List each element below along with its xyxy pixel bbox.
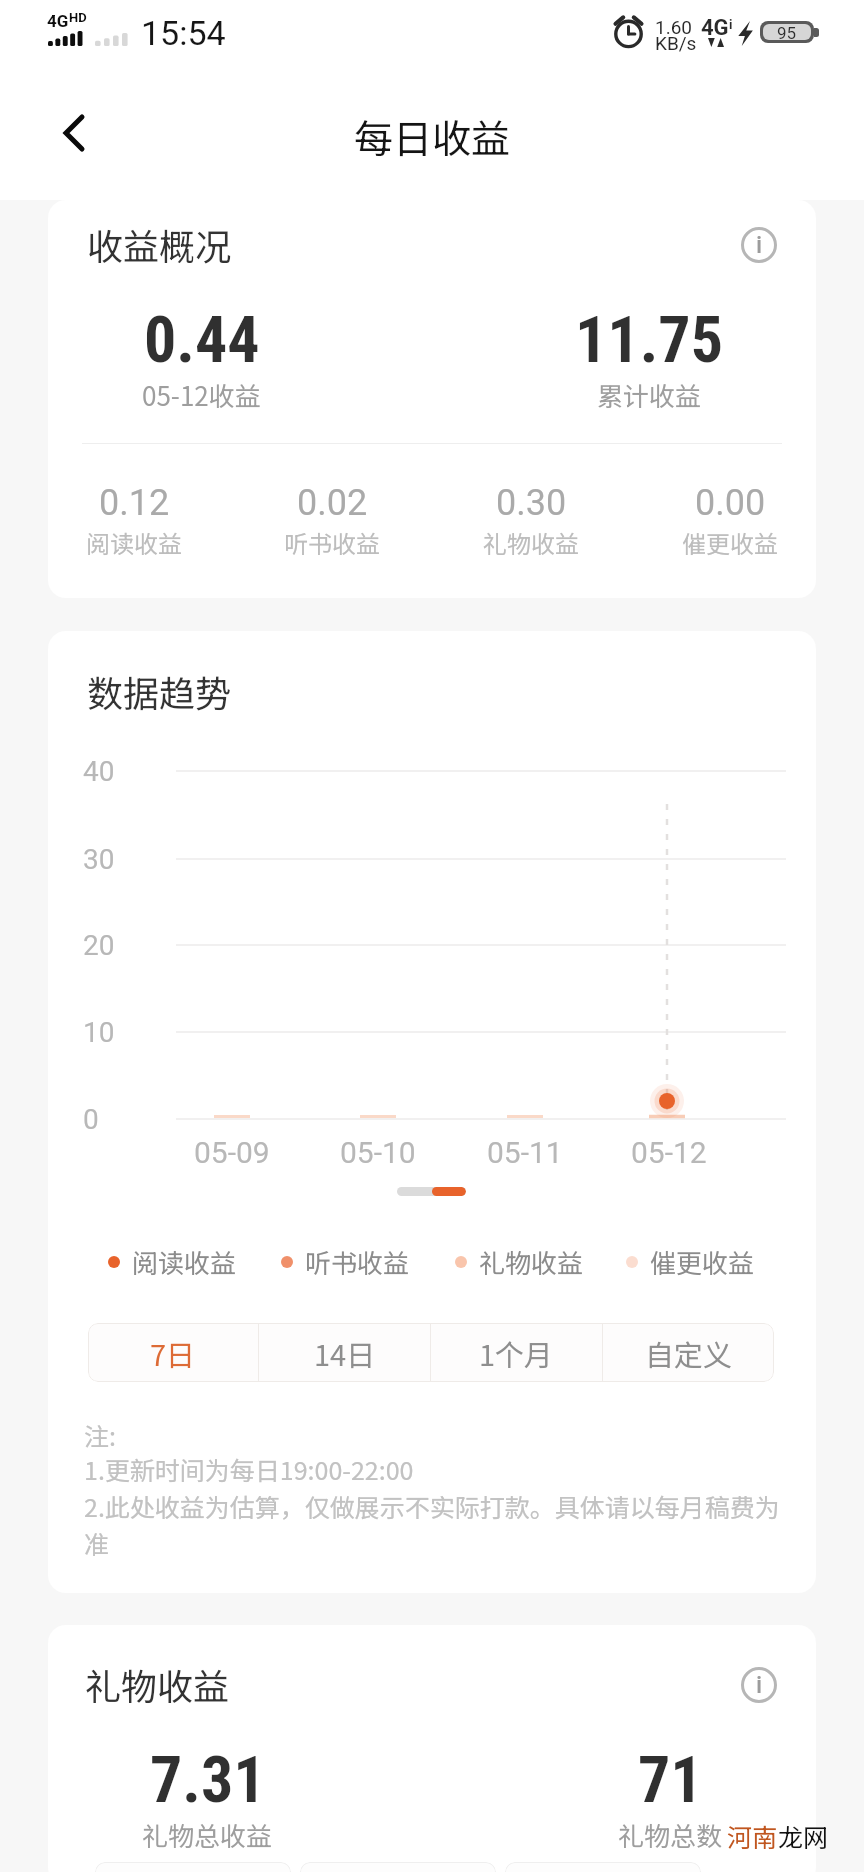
staticText: 阅读收益 <box>132 1243 237 1281</box>
staticText: 1.60 <box>655 16 693 38</box>
staticText: 数据趋势 <box>87 665 232 717</box>
staticText: 2.此处收益为估算，仅做展示不实际打款。具体请以每月稿费为准 <box>84 1488 784 1561</box>
staticText: 龙网 <box>778 1818 829 1854</box>
staticText: 7.31 <box>150 1743 266 1818</box>
staticText: 0.02 <box>297 482 368 524</box>
staticText: 催更收益 <box>650 1243 755 1281</box>
staticText: 自定义 <box>645 1332 733 1374</box>
staticText: 注: <box>84 1417 116 1453</box>
staticText: 14日 <box>314 1332 376 1374</box>
staticText: 礼物收益 <box>479 1243 584 1281</box>
button[interactable]: Info <box>736 1662 782 1708</box>
staticText: 收益概况 <box>87 218 232 270</box>
staticText: 0.12 <box>99 482 170 524</box>
staticText: 4G <box>47 11 69 31</box>
staticText: 71 <box>638 1743 703 1818</box>
staticText: 阅读收益 <box>86 525 182 560</box>
staticText: 催更收益 <box>682 525 778 560</box>
staticText: 05-12收益 <box>142 376 261 414</box>
staticText: 0.44 <box>144 303 260 378</box>
button[interactable]: 1个月 <box>431 1323 602 1382</box>
staticText: 礼物总收益 <box>142 1816 273 1854</box>
button[interactable]: 7日 <box>88 1323 258 1382</box>
staticText: 20 <box>83 929 115 962</box>
staticText: 累计收益 <box>597 376 702 414</box>
staticText: i <box>729 17 733 32</box>
staticText: 0.30 <box>496 482 567 524</box>
button[interactable] <box>300 1862 496 1872</box>
staticText: 15:54 <box>141 13 226 53</box>
staticText: 河南 <box>727 1818 778 1854</box>
staticText: 0.00 <box>695 482 766 524</box>
button[interactable]: Back <box>31 90 117 176</box>
staticText: 1.更新时间为每日19:00-22:00 <box>84 1451 414 1487</box>
staticText: 05-10 <box>340 1135 416 1170</box>
staticText: 10 <box>83 1016 115 1049</box>
staticText: 7日 <box>150 1332 196 1374</box>
staticText: 听书收益 <box>305 1243 410 1281</box>
staticText: 0 <box>83 1103 99 1136</box>
staticText: 1个月 <box>479 1332 554 1374</box>
staticText: 40 <box>83 755 115 788</box>
staticText: 每日收益 <box>354 108 511 164</box>
staticText: KB/s <box>655 32 697 54</box>
staticText: 礼物总数 <box>618 1816 723 1854</box>
staticText: 礼物收益 <box>85 1658 230 1710</box>
staticText: 30 <box>83 843 115 876</box>
staticText: 4G <box>701 15 729 41</box>
staticText: i <box>756 1671 763 1699</box>
staticText: 05-12 <box>631 1135 707 1170</box>
staticText: 05-09 <box>194 1135 270 1170</box>
staticText: 礼物收益 <box>483 525 579 560</box>
staticText: HD <box>69 10 87 25</box>
button[interactable]: 14日 <box>259 1323 430 1382</box>
button[interactable]: Info <box>736 222 782 268</box>
staticText: 95 <box>777 24 797 39</box>
staticText: 11.75 <box>575 303 723 378</box>
button[interactable] <box>505 1862 701 1872</box>
button[interactable]: 自定义 <box>603 1323 774 1382</box>
staticText: i <box>756 231 763 259</box>
button[interactable] <box>95 1862 291 1872</box>
staticText: 听书收益 <box>284 525 380 560</box>
staticText: 05-11 <box>487 1135 563 1170</box>
